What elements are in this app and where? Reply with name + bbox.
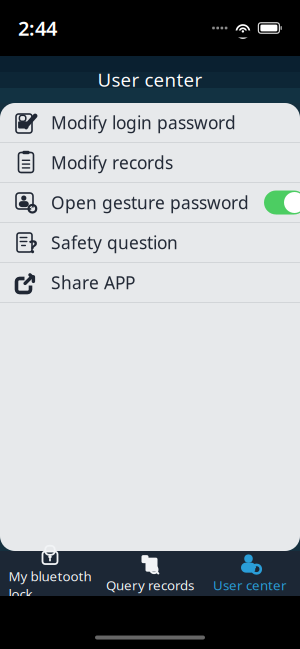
- button[interactable]: Modify login password: [0, 103, 300, 142]
- staticText: Open gesture password: [51, 191, 249, 214]
- staticText: User center: [97, 67, 202, 92]
- staticText: Modify records: [51, 151, 173, 174]
- staticText: My bluetooth lock: [8, 567, 91, 603]
- button[interactable]: Modify records: [0, 143, 300, 182]
- button[interactable]: User center: [200, 551, 300, 596]
- button[interactable]: Query records: [100, 551, 200, 596]
- staticText: ?: [29, 235, 37, 258]
- button[interactable]: ?: [0, 223, 300, 262]
- staticText: Share APP: [51, 271, 135, 294]
- staticText: Safety question: [51, 231, 178, 254]
- staticText: Query records: [106, 576, 194, 594]
- staticText: 2:44: [18, 15, 57, 41]
- button[interactable]: Open gesture password: [0, 183, 300, 222]
- button[interactable]: My bluetooth lock: [0, 551, 100, 596]
- staticText: User center: [213, 576, 287, 594]
- staticText: Modify login password: [51, 111, 236, 134]
- button[interactable]: Share APP: [0, 263, 300, 302]
